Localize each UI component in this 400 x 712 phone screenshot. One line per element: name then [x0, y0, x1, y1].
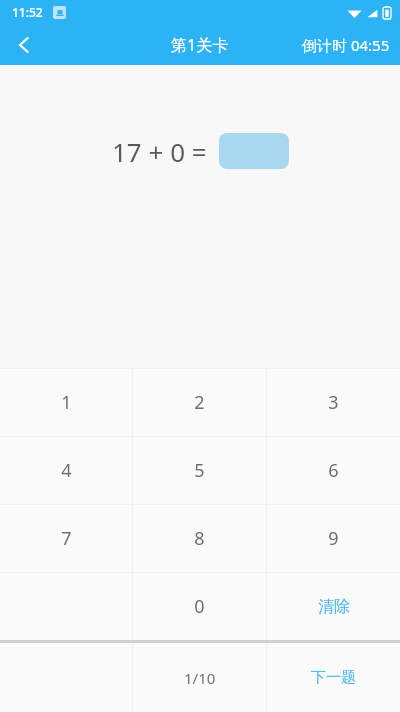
staticText: 0 [194, 594, 205, 619]
staticText: 11:52 [12, 4, 43, 20]
staticText: 第1关卡 [171, 34, 229, 56]
staticText: 9 [328, 526, 339, 551]
button[interactable]: 8 [133, 505, 266, 572]
staticText: 2 [194, 390, 205, 415]
staticText: 下一题 [311, 668, 356, 687]
button[interactable]: 0 [133, 573, 266, 640]
staticText: 5 [194, 458, 205, 483]
button[interactable]: 9 [267, 505, 400, 572]
staticText: 清除 [318, 597, 350, 617]
staticText: 8 [194, 526, 205, 551]
button[interactable]: 1/10 [133, 643, 266, 712]
staticText: 6 [328, 458, 339, 483]
button[interactable]: 4 [0, 437, 132, 504]
button[interactable]: Back [0, 24, 48, 65]
staticText: 7 [61, 526, 72, 551]
staticText: 4 [61, 458, 72, 483]
button[interactable]: 3 [267, 369, 400, 436]
button[interactable]: 6 [267, 437, 400, 504]
staticText: 倒计时 04:55 [302, 35, 390, 55]
button[interactable]: 7 [0, 505, 132, 572]
button[interactable]: Answer field [219, 133, 289, 169]
staticText: 17 + 0 = [112, 134, 207, 169]
button[interactable]: 1 [0, 369, 132, 436]
button[interactable]: 下一题 [267, 643, 400, 712]
staticText: 1/10 [184, 668, 216, 688]
button[interactable]: 5 [133, 437, 266, 504]
button[interactable]: 2 [133, 369, 266, 436]
staticText: 1 [61, 390, 72, 415]
button[interactable]: 清除 [267, 573, 400, 640]
staticText: 3 [328, 390, 339, 415]
